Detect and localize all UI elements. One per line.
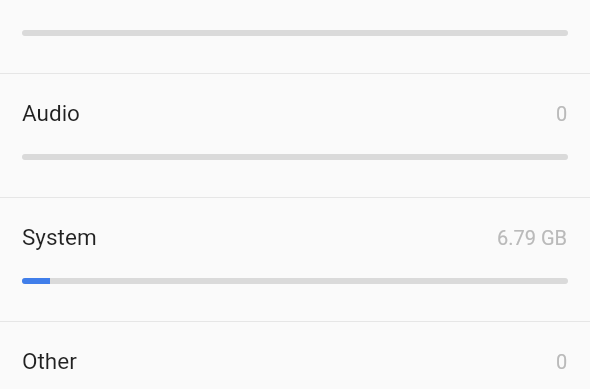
button[interactable]: Other [0,322,590,389]
staticText: System [22,224,97,250]
staticText: Other [22,348,77,374]
staticText: 6.79 GB [497,226,568,249]
staticText: Audio [22,100,80,126]
button[interactable]: Audio [0,74,590,198]
button[interactable]: Videos [0,0,590,74]
button[interactable]: System [0,198,590,322]
staticText: 0 [556,102,568,125]
staticText: 0 [556,350,568,373]
